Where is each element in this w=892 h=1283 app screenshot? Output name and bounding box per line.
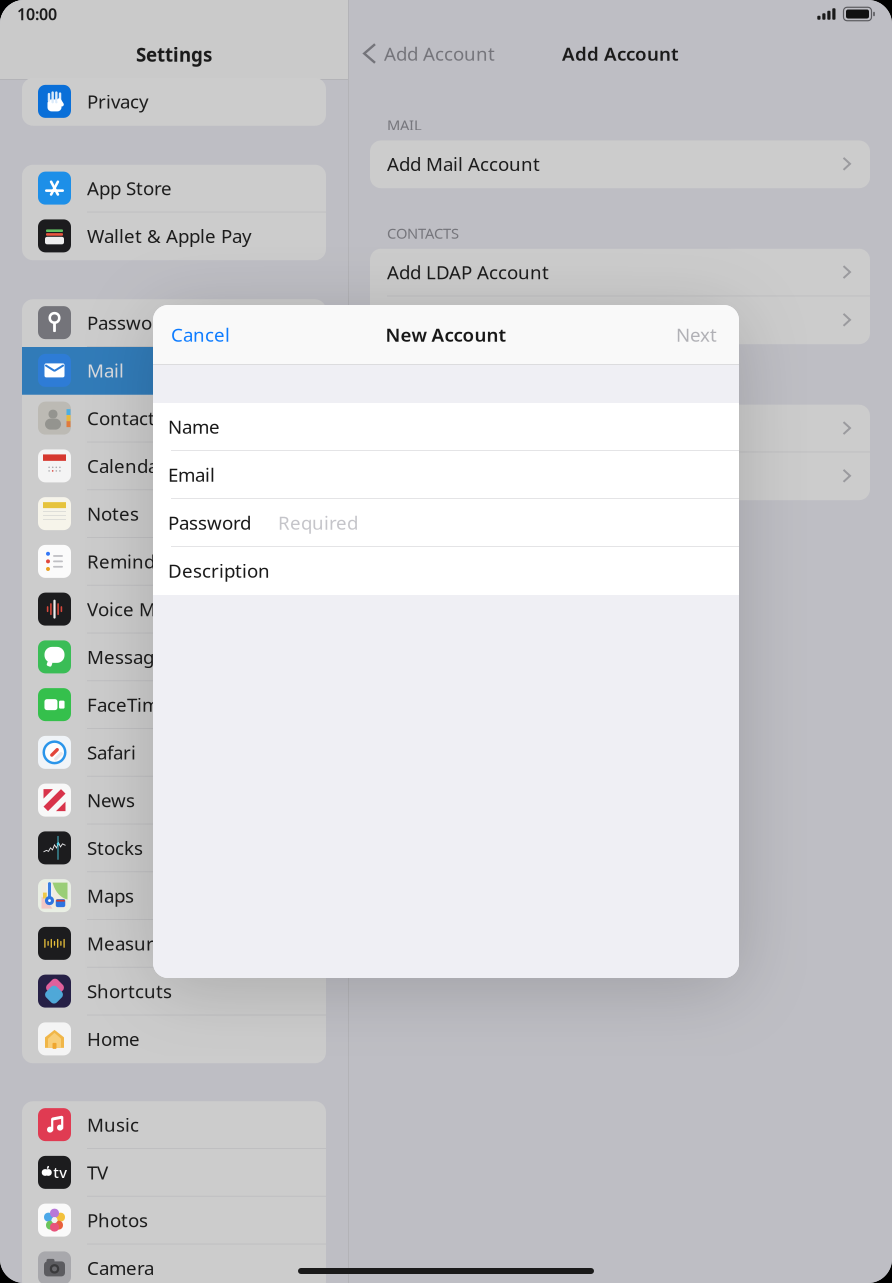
staticText: Add Account bbox=[384, 41, 495, 66]
button[interactable]: Home bbox=[22, 1015, 326, 1063]
button[interactable]: Messages bbox=[22, 633, 326, 681]
staticText: Stocks bbox=[87, 835, 143, 860]
staticText: Reminders bbox=[87, 549, 183, 574]
staticText: Notes bbox=[87, 501, 139, 526]
staticText: Add LDAP Account bbox=[387, 260, 549, 284]
button[interactable]: Mail bbox=[22, 347, 326, 395]
staticText: Cancel bbox=[171, 322, 230, 347]
button[interactable]: Passwords bbox=[22, 299, 326, 347]
button[interactable]: Add Mail Account bbox=[370, 140, 870, 188]
button[interactable]: FaceTime bbox=[22, 681, 326, 729]
button[interactable]: Safari bbox=[22, 729, 326, 777]
button[interactable]: News bbox=[22, 777, 326, 825]
staticText: Passwords bbox=[87, 310, 179, 335]
button[interactable]: Camera bbox=[22, 1244, 326, 1283]
staticText: Messages bbox=[87, 644, 174, 669]
button[interactable]: Add Account bbox=[349, 31, 495, 76]
staticText: TV bbox=[87, 1160, 108, 1185]
staticText: Next bbox=[676, 322, 717, 347]
staticText: Mail bbox=[87, 358, 124, 383]
button[interactable]: Add LDAP Account bbox=[370, 249, 870, 296]
staticText: Photos bbox=[87, 1208, 148, 1232]
staticText: Contacts bbox=[87, 406, 164, 430]
button[interactable]: Contacts bbox=[22, 395, 326, 443]
button[interactable]: Shortcuts bbox=[22, 968, 326, 1016]
button[interactable]: Measure bbox=[22, 920, 326, 968]
staticText: Home bbox=[87, 1026, 140, 1051]
staticText: Add Account bbox=[562, 41, 679, 66]
staticText: Add CardDAV Account bbox=[387, 307, 578, 332]
button[interactable]: Maps bbox=[22, 872, 326, 920]
staticText: Safari bbox=[87, 740, 136, 765]
button[interactable]: Reminders bbox=[22, 538, 326, 586]
staticText: Calendar bbox=[87, 453, 166, 478]
staticText: 10:00 bbox=[17, 3, 57, 25]
staticText: Shortcuts bbox=[87, 979, 172, 1003]
staticText: FaceTime bbox=[87, 692, 170, 717]
staticText: Email bbox=[168, 462, 215, 487]
button[interactable]: tv bbox=[22, 1149, 326, 1197]
staticText: Settings bbox=[136, 42, 212, 67]
staticText: Camera bbox=[87, 1255, 154, 1280]
staticText: Maps bbox=[87, 883, 134, 908]
staticText: CONTACTS bbox=[387, 223, 459, 243]
button[interactable]: Wallet & Apple Pay bbox=[22, 212, 326, 260]
staticText: Required bbox=[278, 510, 358, 535]
button[interactable]: Add CardDAV Account bbox=[370, 296, 870, 344]
staticText: Measure bbox=[87, 931, 164, 956]
button[interactable]: App Store bbox=[22, 165, 326, 213]
button[interactable]: Photos bbox=[22, 1197, 326, 1245]
staticText: Add Mail Account bbox=[387, 151, 540, 176]
button[interactable]: Music bbox=[22, 1101, 326, 1149]
button[interactable]: Voice Memos bbox=[22, 586, 326, 634]
button[interactable]: Add Subscribed Calendar bbox=[370, 452, 870, 500]
staticText: Name bbox=[168, 414, 220, 439]
staticText: Voice Memos bbox=[87, 597, 204, 621]
button[interactable]: Notes bbox=[22, 490, 326, 538]
button[interactable]: Stocks bbox=[22, 824, 326, 872]
button[interactable]: Next bbox=[676, 307, 739, 362]
staticText: App Store bbox=[87, 176, 172, 200]
staticText: tv bbox=[53, 1163, 67, 1182]
button[interactable]: Calendar bbox=[22, 442, 326, 490]
staticText: Wallet & Apple Pay bbox=[87, 223, 252, 248]
staticText: Description bbox=[168, 558, 270, 583]
staticText: MAIL bbox=[387, 115, 422, 134]
staticText: Password bbox=[168, 510, 251, 535]
button[interactable]: Add CalDAV Account bbox=[370, 405, 870, 452]
staticText: Music bbox=[87, 1112, 139, 1137]
staticText: New Account bbox=[385, 322, 506, 347]
button[interactable]: Privacy bbox=[22, 78, 326, 126]
staticText: News bbox=[87, 788, 135, 812]
button[interactable]: Cancel bbox=[153, 307, 230, 362]
staticText: Privacy bbox=[87, 89, 149, 114]
